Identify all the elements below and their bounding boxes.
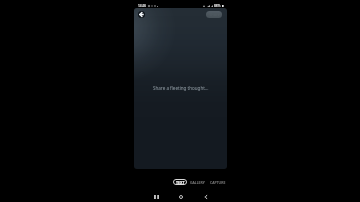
button[interactable]: TEXT	[173, 179, 187, 185]
staticText: GALLERY	[190, 180, 205, 185]
button[interactable]: Recents	[151, 192, 161, 202]
staticText: CAPTURE	[210, 180, 226, 185]
button[interactable]: Back	[138, 11, 145, 18]
staticText: 88%	[214, 4, 221, 8]
button[interactable]: Home	[176, 192, 186, 202]
staticText: TEXT	[176, 180, 185, 185]
button[interactable]: Share	[206, 11, 222, 18]
staticText: Share a fleeting thought...	[153, 85, 209, 91]
button[interactable]: Back	[201, 192, 211, 202]
button[interactable]: CAPTURE	[209, 179, 227, 186]
staticText: 14:26	[138, 4, 147, 8]
button[interactable]: GALLERY	[189, 179, 206, 186]
